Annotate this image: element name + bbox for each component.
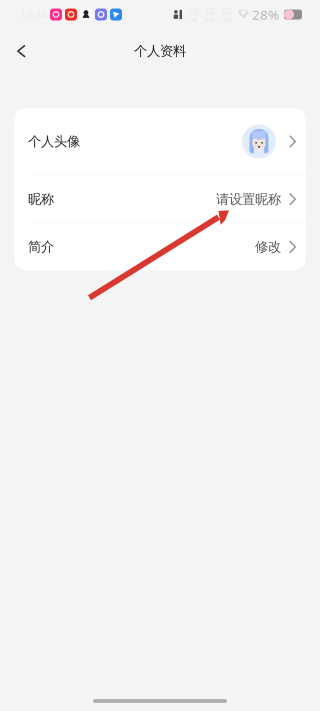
button[interactable]: 简介: [14, 223, 306, 270]
button[interactable]: Back: [0, 31, 46, 71]
staticText: 请设置昵称: [216, 191, 281, 207]
staticText: 5G: [204, 7, 215, 17]
staticText: 昵称: [28, 191, 54, 207]
staticText: 个人资料: [134, 43, 186, 59]
staticText: 修改: [255, 239, 281, 255]
button[interactable]: 个人头像: [14, 108, 306, 175]
staticText: 个人头像: [28, 133, 80, 150]
staticText: 5G: [221, 7, 232, 17]
staticText: 5G: [187, 7, 198, 17]
staticText: 28%: [252, 6, 279, 23]
staticText: 简介: [28, 239, 54, 255]
button[interactable]: 昵称: [14, 176, 306, 222]
